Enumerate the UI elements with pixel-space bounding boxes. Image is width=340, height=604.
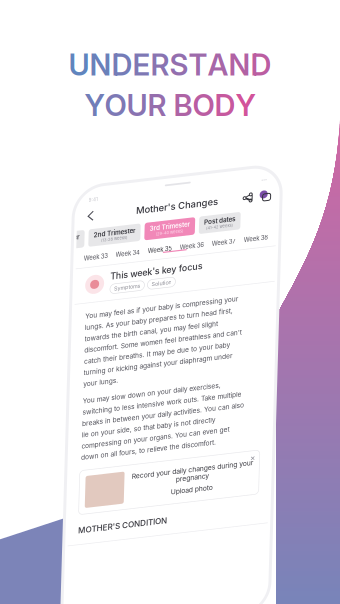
button[interactable]: Week 33	[90, 325, 154, 339]
staticText: D	[111, 47, 132, 82]
staticText: R	[150, 47, 169, 82]
staticText: N	[228, 47, 250, 82]
staticText: Week 33	[98, 325, 146, 339]
button[interactable]: Week 34	[154, 325, 218, 339]
staticText: Y	[235, 87, 255, 123]
staticText: (13-28 weeks)	[131, 295, 184, 304]
staticText: This week's key focus	[152, 363, 336, 385]
staticText: A	[207, 47, 228, 82]
staticText: D	[250, 47, 271, 82]
staticText: Y	[84, 87, 104, 123]
staticText: D	[214, 87, 235, 123]
staticText: 3rd Trimester	[228, 280, 309, 295]
staticText: You may feel as if your baby is compress…	[104, 440, 340, 592]
staticText: Symptoms	[160, 393, 213, 406]
button[interactable]: 2nd Trimester	[106, 274, 210, 309]
staticText: T	[188, 47, 207, 82]
staticText: N	[89, 47, 111, 82]
staticText: Mother's Changes	[200, 237, 340, 259]
staticText: (0-12 weeks)	[25, 295, 74, 304]
staticText: Week 34	[161, 325, 210, 339]
button[interactable]: 1st Trimester	[2, 274, 98, 309]
staticText: R	[147, 87, 166, 123]
staticText: 1st Trimester	[12, 280, 88, 295]
staticText: O	[192, 87, 214, 123]
staticText: Week 35	[226, 325, 274, 339]
button[interactable]: Week 35	[218, 325, 282, 339]
staticText: (29-40 weeks)	[240, 295, 296, 304]
button[interactable]: 3rd Trimester	[218, 274, 319, 309]
staticText: U	[126, 87, 147, 123]
staticText: Solution	[235, 393, 275, 406]
staticText: U	[68, 47, 89, 82]
button[interactable]: Back	[94, 229, 124, 267]
staticText: E	[132, 47, 150, 82]
staticText: B	[173, 87, 192, 123]
staticText: 2nd Trimester	[116, 280, 200, 295]
staticText: O	[104, 87, 126, 123]
staticText: S	[169, 47, 188, 82]
